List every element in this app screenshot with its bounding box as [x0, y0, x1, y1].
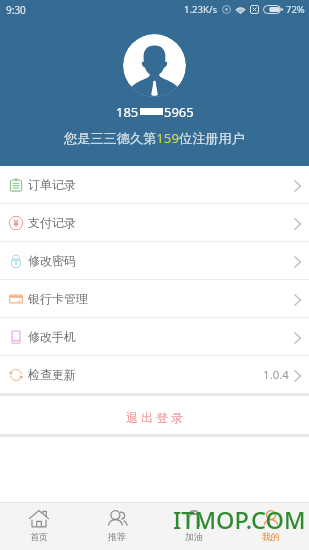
staticText: 银行卡管理 — [28, 291, 88, 306]
button[interactable]: 修改手机 — [0, 318, 309, 355]
staticText: 185 — [116, 103, 139, 119]
staticText: 支付记录 — [28, 215, 76, 230]
button[interactable]: 银行卡管理 — [0, 280, 309, 317]
button[interactable]: 推荐 — [78, 503, 155, 550]
button[interactable]: 检查更新 — [0, 356, 309, 393]
button[interactable]: 加油 — [155, 503, 232, 550]
staticText: 检查更新 — [28, 367, 76, 382]
staticText: 5965 — [164, 103, 194, 119]
staticText: 修改手机 — [28, 329, 76, 344]
staticText: 您是三三德久第159位注册用户 — [64, 129, 245, 145]
staticText: 推荐 — [108, 531, 126, 542]
staticText: 首页 — [30, 531, 48, 542]
staticText: 修改密码 — [28, 253, 76, 268]
button[interactable]: 退 出 登 录 — [0, 396, 309, 434]
staticText: 退 出 登 录 — [126, 409, 184, 425]
staticText: 订单记录 — [28, 177, 76, 192]
button[interactable]: 首页 — [0, 503, 78, 550]
staticText: 72% — [286, 3, 305, 16]
button[interactable]: 订单记录 — [0, 166, 309, 203]
staticText: 1.0.4 — [263, 367, 289, 383]
staticText: 1.23K/s — [184, 3, 218, 16]
staticText: 我的 — [262, 531, 280, 542]
button[interactable]: 修改密码 — [0, 242, 309, 279]
button[interactable]: 我的 — [232, 503, 309, 550]
button[interactable]: 支付记录 — [0, 204, 309, 241]
staticText: 加油 — [185, 531, 203, 542]
staticText: 9:30 — [6, 3, 26, 17]
staticText: ITMOP.COM — [173, 504, 306, 536]
